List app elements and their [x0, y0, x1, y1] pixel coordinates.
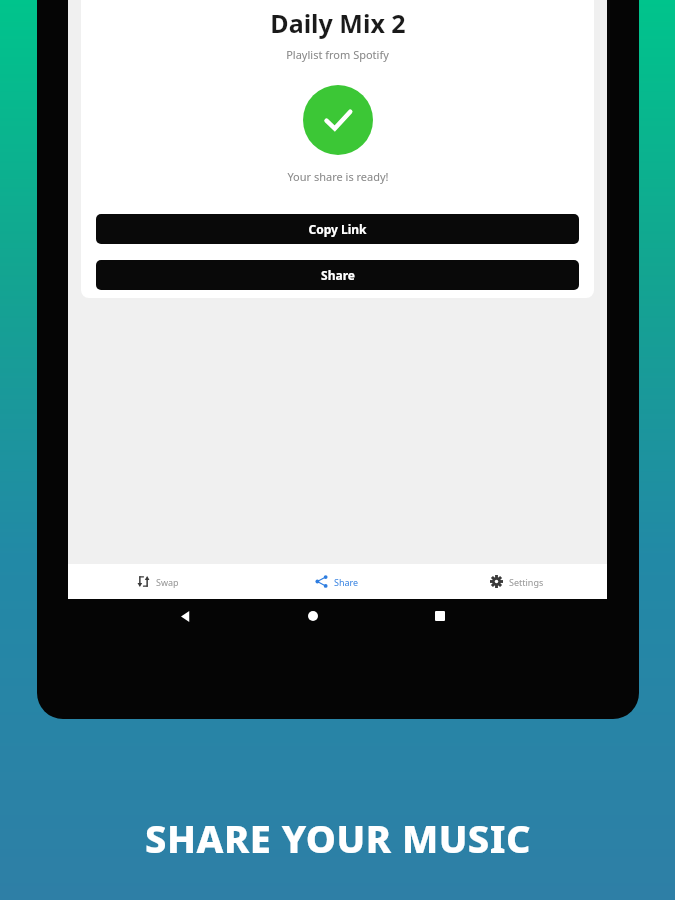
- button[interactable]: Recent apps: [426, 602, 454, 630]
- staticText: Daily Mix 2: [270, 6, 406, 40]
- button[interactable]: Back: [172, 602, 200, 630]
- staticText: Settings: [509, 576, 544, 588]
- other: Swap: [137, 575, 150, 588]
- staticText: Copy Link: [308, 221, 367, 237]
- other: Share: [315, 575, 328, 588]
- button[interactable]: Home: [299, 602, 327, 630]
- staticText: Share: [334, 576, 359, 588]
- staticText: Share: [321, 267, 355, 283]
- other: Settings: [490, 575, 503, 588]
- staticText: Your share is ready!: [287, 169, 389, 184]
- button[interactable]: Swap: [68, 564, 247, 599]
- staticText: Playlist from Spotify: [286, 47, 389, 62]
- button[interactable]: Share: [247, 564, 427, 599]
- button[interactable]: Copy Link: [96, 214, 579, 244]
- button[interactable]: Share: [96, 260, 579, 290]
- button[interactable]: Settings: [427, 564, 607, 599]
- staticText: SHARE YOUR MUSIC: [145, 812, 531, 864]
- staticText: Swap: [156, 576, 179, 588]
